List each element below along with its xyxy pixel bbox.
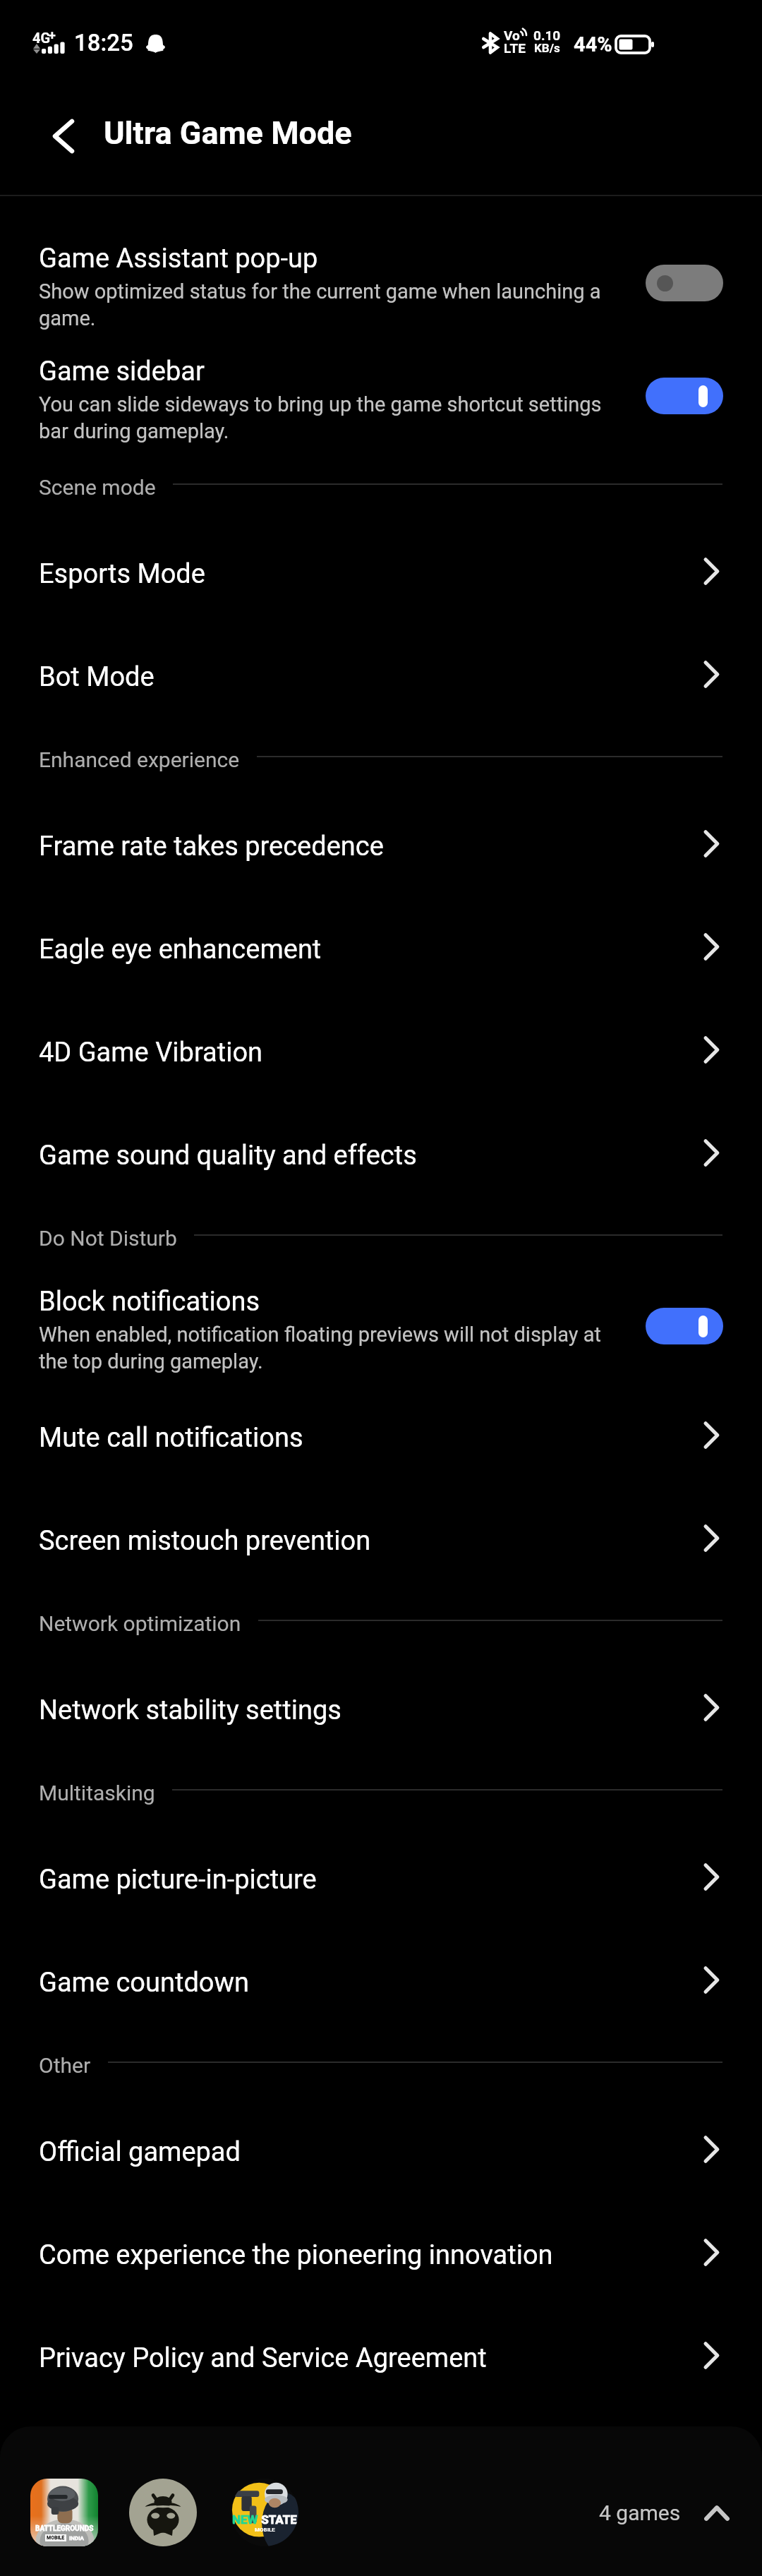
staticText: MOBILE: [255, 2527, 275, 2533]
staticText: Other: [39, 2052, 91, 2078]
staticText: Come experience the pioneering innovatio…: [39, 2239, 703, 2270]
staticText: Game sound quality and effects: [39, 1140, 703, 1171]
staticText: 4G: [32, 30, 51, 46]
staticText: Scene mode: [39, 474, 156, 500]
button[interactable]: Toggle on: [646, 378, 723, 414]
button[interactable]: Screen mistouch prevention: [0, 1489, 762, 1592]
staticText: Esports Mode: [39, 558, 703, 589]
button[interactable]: Official gamepad: [0, 2100, 762, 2203]
staticText: Multitasking: [39, 1780, 155, 1805]
staticText: Screen mistouch prevention: [39, 1525, 703, 1556]
staticText: Eagle eye enhancement: [39, 934, 703, 965]
staticText: Bot Mode: [39, 661, 703, 692]
staticText: +: [49, 28, 56, 42]
button[interactable]: Toggle off: [646, 265, 723, 301]
button[interactable]: Game Assistant pop-up: [0, 230, 762, 343]
staticText: Vo: [504, 28, 520, 43]
button[interactable]: Come experience the pioneering innovatio…: [0, 2203, 762, 2306]
staticText: Network stability settings: [39, 1695, 703, 1726]
button[interactable]: Game launcher: [129, 2479, 197, 2546]
other: Expand games: [705, 2505, 729, 2521]
staticText: KB/s: [534, 41, 560, 55]
button[interactable]: Game sound quality and effects: [0, 1104, 762, 1207]
staticText: Privacy Policy and Service Agreement: [39, 2342, 703, 2373]
staticText: Do Not Disturb: [39, 1225, 177, 1251]
button[interactable]: Esports Mode: [0, 522, 762, 625]
button[interactable]: Game sidebar: [0, 343, 762, 456]
button[interactable]: Battlegrounds Mobile India: [30, 2479, 98, 2546]
staticText: Frame rate takes precedence: [39, 831, 703, 862]
staticText: Enhanced experience: [39, 747, 240, 772]
button[interactable]: Block notifications: [0, 1273, 762, 1386]
button[interactable]: Mute call notifications: [0, 1386, 762, 1489]
staticText: Game picture-in-picture: [39, 1864, 703, 1895]
staticText: Game countdown: [39, 1967, 703, 1998]
staticText: Game sidebar: [39, 356, 205, 387]
staticText: INDIA: [69, 2535, 84, 2541]
button[interactable]: Eagle eye enhancement: [0, 898, 762, 1001]
button[interactable]: 4 games: [599, 2500, 729, 2525]
button[interactable]: Game countdown: [0, 1931, 762, 2034]
button[interactable]: Toggle on: [646, 1308, 723, 1344]
staticText: NEW: [232, 2512, 258, 2527]
staticText: You can slide sideways to bring up the g…: [39, 390, 603, 444]
button[interactable]: Game picture-in-picture: [0, 1828, 762, 1931]
staticText: Mute call notifications: [39, 1422, 703, 1453]
button[interactable]: Bot Mode: [0, 625, 762, 728]
staticText: 0.10: [533, 28, 561, 43]
staticText: LTE: [504, 40, 526, 56]
button[interactable]: PUBG New State Mobile: [231, 2479, 298, 2546]
staticText: 4D Game Vibration: [39, 1037, 703, 1068]
staticText: BATTLEGROUNDS: [35, 2524, 94, 2533]
staticText: Network optimization: [39, 1611, 241, 1636]
staticText: 4 games: [599, 2500, 681, 2525]
staticText: Official gamepad: [39, 2136, 703, 2167]
button[interactable]: Frame rate takes precedence: [0, 795, 762, 898]
button[interactable]: 4D Game Vibration: [0, 1001, 762, 1104]
button[interactable]: Back: [23, 98, 100, 176]
staticText: Ultra Game Mode: [104, 114, 352, 152]
button[interactable]: Network stability settings: [0, 1659, 762, 1762]
staticText: When enabled, notification floating prev…: [39, 1320, 603, 1374]
staticText: 18:25: [74, 29, 133, 56]
staticText: 44%: [574, 32, 612, 56]
staticText: Game Assistant pop-up: [39, 243, 318, 274]
button[interactable]: Privacy Policy and Service Agreement: [0, 2306, 762, 2409]
staticText: STATE: [258, 2512, 297, 2527]
staticText: Block notifications: [39, 1286, 260, 1317]
staticText: Show optimized status for the current ga…: [39, 277, 603, 331]
staticText: MOBILE: [47, 2535, 65, 2541]
